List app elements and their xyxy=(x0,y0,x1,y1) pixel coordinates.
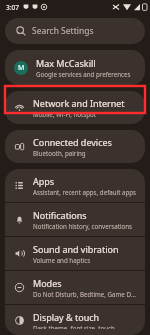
button[interactable]: Apps xyxy=(5,169,145,202)
staticText: Connected devices xyxy=(33,136,112,148)
button[interactable]: Display & touch xyxy=(5,305,145,335)
staticText: Volume and haptics xyxy=(33,256,91,264)
staticText: Search Settings xyxy=(32,25,94,37)
staticText: Notifications xyxy=(33,209,87,221)
staticText: Notification history, conversations xyxy=(33,222,133,230)
button[interactable]: Search Settings xyxy=(5,18,145,44)
staticText: Assistant, recent apps, default apps xyxy=(33,188,137,196)
staticText: Max McCaskill xyxy=(36,57,96,69)
button[interactable]: Modes xyxy=(5,271,145,304)
staticText: Network and Internet xyxy=(33,97,125,109)
staticText: Apps xyxy=(33,175,55,187)
staticText: Google services and preferences xyxy=(36,70,131,78)
staticText: 3:07 xyxy=(6,3,19,12)
staticText: Mobile, Wi-Fi, hotspot xyxy=(33,110,97,118)
button[interactable]: Sound and vibration xyxy=(5,237,145,270)
staticText: Do Not Disturb, Bedtime, Game Dashboard xyxy=(33,290,137,298)
button[interactable]: Notifications xyxy=(5,203,145,236)
staticText: Bluetooth, pairing xyxy=(33,149,86,157)
staticText: Sound and vibration xyxy=(33,243,119,255)
button[interactable]: Network and Internet xyxy=(5,91,145,124)
staticText: Display & touch xyxy=(33,311,100,323)
button[interactable]: Connected devices xyxy=(5,130,145,163)
staticText: Modes xyxy=(33,277,62,289)
staticText: Dark theme, font size, touch xyxy=(33,324,115,329)
button[interactable]: M xyxy=(5,50,145,85)
staticText: M xyxy=(18,63,25,73)
